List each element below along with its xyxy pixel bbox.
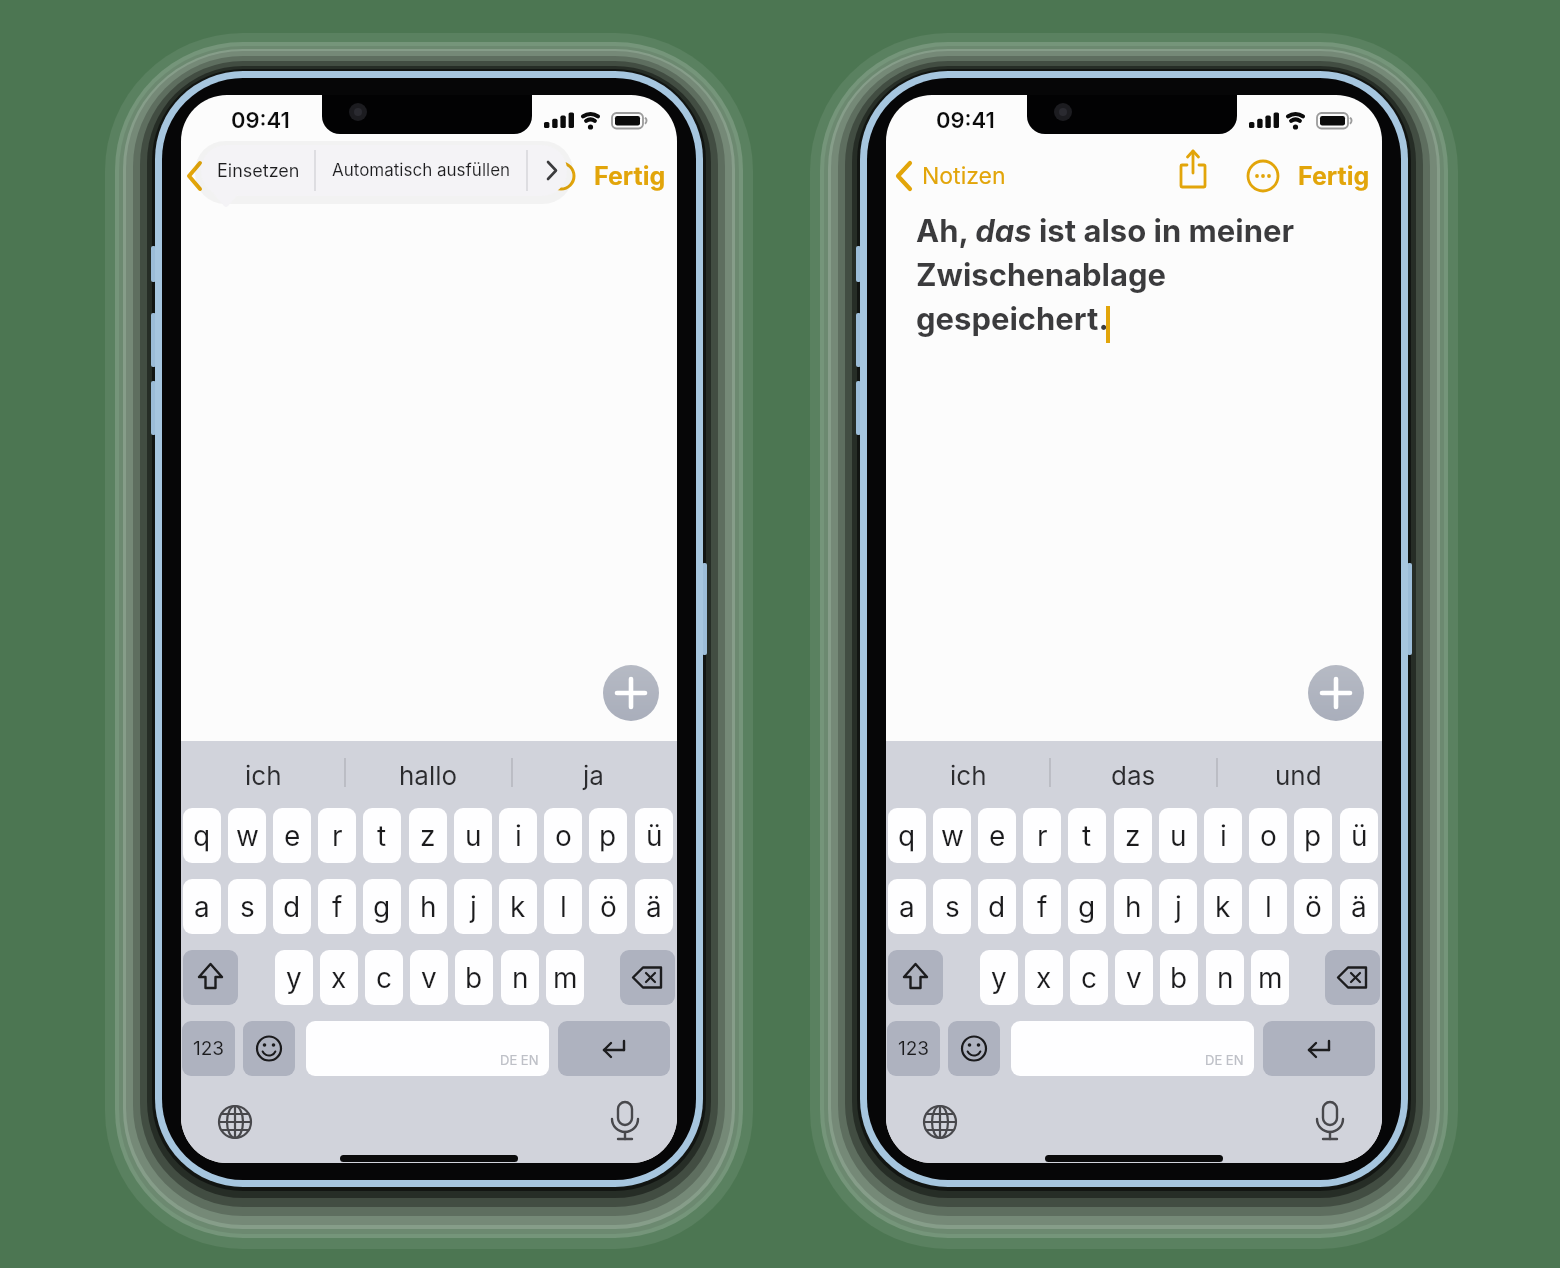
button[interactable]: y [275,950,313,1005]
button[interactable]: h [1114,879,1152,934]
button[interactable] [1312,1100,1348,1144]
button[interactable]: ich [893,753,1043,797]
button[interactable]: i [499,808,537,863]
button[interactable]: x [1025,950,1063,1005]
staticText: o [1260,819,1277,853]
button[interactable]: hallo [353,753,503,797]
button[interactable]: h [409,879,447,934]
button[interactable]: t [1068,808,1106,863]
button[interactable]: ä [635,879,673,934]
button[interactable]: das [1058,753,1208,797]
button[interactable]: r [1023,808,1061,863]
button[interactable]: ö [589,879,627,934]
button[interactable]: a [888,879,926,934]
button[interactable]: j [1159,879,1197,934]
staticText: n [1217,961,1234,995]
button[interactable]: 123 [887,1021,940,1076]
staticText: r [332,819,343,853]
button[interactable]: y [980,950,1018,1005]
button[interactable]: a [183,879,221,934]
button[interactable]: x [320,950,358,1005]
button[interactable]: q [888,808,926,863]
button[interactable]: ü [635,808,673,863]
staticText: i [1220,819,1227,853]
button[interactable]: e [273,808,311,863]
button[interactable] [243,1021,295,1076]
button[interactable]: ich [188,753,338,797]
button[interactable]: d [273,879,311,934]
button[interactable]: p [589,808,627,863]
button[interactable] [1263,1021,1375,1076]
button[interactable]: d [978,879,1016,934]
staticText: Automatisch ausfüllen [332,160,511,181]
button[interactable] [217,1104,253,1140]
button[interactable]: j [454,879,492,934]
staticText: q [193,819,211,853]
button[interactable]: ö [1294,879,1332,934]
button[interactable]: u [454,808,492,863]
button[interactable] [1245,158,1281,194]
button[interactable]: c [365,950,403,1005]
button[interactable] [603,665,659,721]
button[interactable] [948,1021,1000,1076]
button[interactable]: DE EN [306,1021,549,1076]
button[interactable]: g [1068,879,1106,934]
button[interactable] [527,145,567,196]
button[interactable]: n [1206,950,1244,1005]
button[interactable]: ü [1340,808,1378,863]
button[interactable] [620,950,675,1005]
button[interactable]: Automatisch ausfüllen [315,145,527,196]
button[interactable]: s [228,879,266,934]
button[interactable] [1325,950,1380,1005]
button[interactable]: u [1159,808,1197,863]
button[interactable] [922,1104,958,1140]
staticText: d [283,890,301,924]
button[interactable]: z [409,808,447,863]
staticText: i [515,819,522,853]
button[interactable]: c [1070,950,1108,1005]
button[interactable] [1308,665,1364,721]
button[interactable]: k [499,879,537,934]
button[interactable]: m [546,950,584,1005]
button[interactable]: q [183,808,221,863]
button[interactable]: w [228,808,266,863]
button[interactable]: i [1204,808,1242,863]
button[interactable]: z [1114,808,1152,863]
button[interactable]: t [363,808,401,863]
button[interactable]: r [318,808,356,863]
button[interactable]: v [410,950,448,1005]
staticText: Ah, das ist also in meiner Zwischenablag… [916,212,1295,338]
button[interactable]: Einsetzen [201,145,315,196]
staticText: s [240,890,255,924]
button[interactable]: 123 [182,1021,235,1076]
button[interactable]: m [1251,950,1289,1005]
button[interactable]: w [933,808,971,863]
button[interactable]: l [1249,879,1287,934]
button[interactable]: o [544,808,582,863]
button[interactable]: s [933,879,971,934]
button[interactable]: ja [518,753,668,797]
button[interactable]: v [1115,950,1153,1005]
button[interactable]: Fertig [1274,154,1382,198]
button[interactable]: f [1023,879,1061,934]
button[interactable]: b [455,950,493,1005]
button[interactable] [1171,145,1215,199]
button[interactable]: p [1294,808,1332,863]
button[interactable]: e [978,808,1016,863]
button[interactable]: ä [1340,879,1378,934]
button[interactable] [558,1021,670,1076]
button[interactable]: f [318,879,356,934]
button[interactable]: k [1204,879,1242,934]
button[interactable]: und [1223,753,1373,797]
button[interactable] [607,1100,643,1144]
button[interactable]: g [363,879,401,934]
button[interactable]: b [1160,950,1198,1005]
button[interactable]: n [501,950,539,1005]
button[interactable]: Notizen [922,158,1082,194]
button[interactable]: DE EN [1011,1021,1254,1076]
button[interactable] [888,950,943,1005]
button[interactable]: o [1249,808,1287,863]
button[interactable]: l [544,879,582,934]
button[interactable] [183,950,238,1005]
button[interactable]: Fertig [570,154,677,198]
